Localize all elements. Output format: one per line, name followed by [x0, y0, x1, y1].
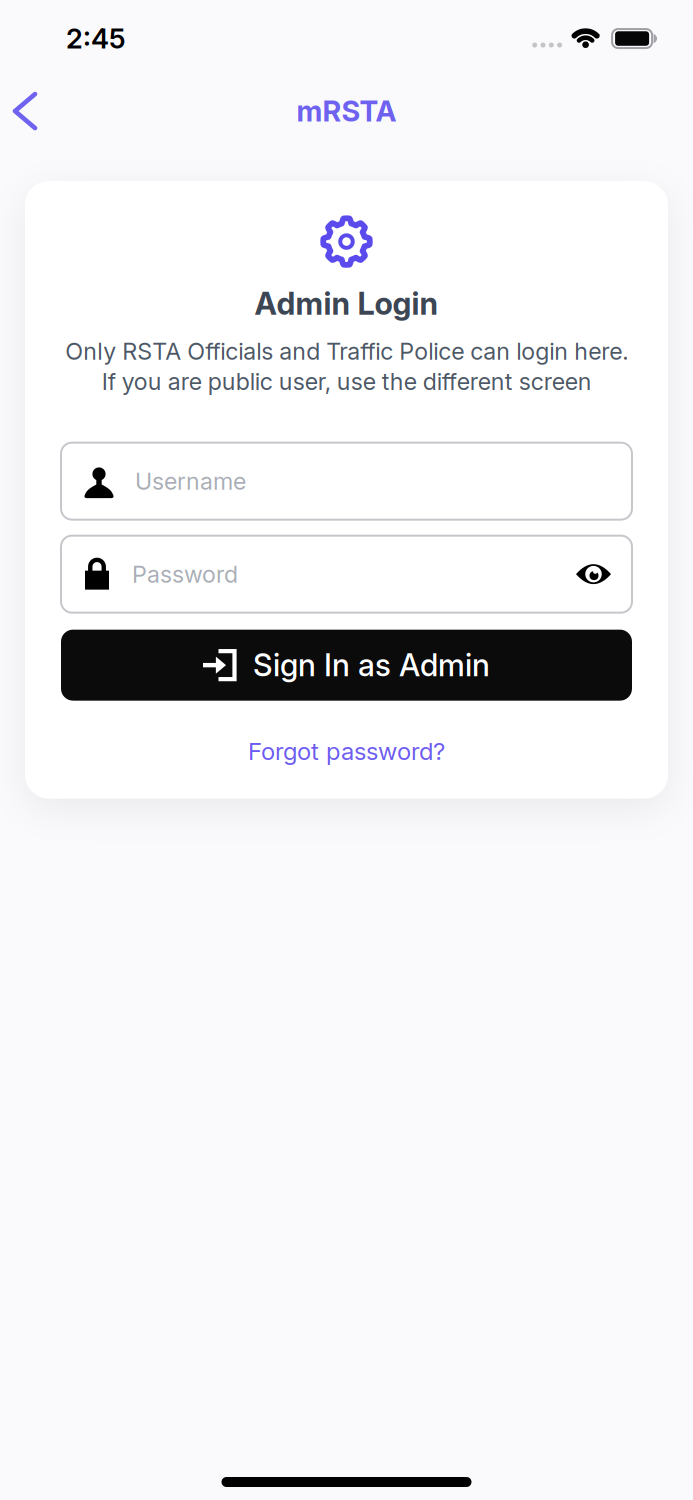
staticText: Sign In as Admin	[253, 647, 490, 684]
button[interactable]: Sign In as Admin	[61, 630, 632, 701]
staticText: Forgot password?	[248, 737, 445, 766]
button[interactable]: Username	[61, 443, 632, 520]
staticText: 2:45	[66, 22, 126, 55]
staticText: Password	[132, 560, 238, 588]
staticText: Username	[135, 467, 246, 495]
staticText: mRSTA	[296, 94, 396, 128]
button[interactable]: Password	[61, 536, 632, 613]
staticText: Admin Login	[254, 285, 438, 322]
staticText: Only RSTA Officials and Traffic Police c…	[65, 337, 628, 396]
button[interactable]: Back	[0, 89, 47, 133]
button[interactable]: Forgot password?	[248, 737, 445, 766]
button[interactable]: Show password	[566, 565, 632, 584]
